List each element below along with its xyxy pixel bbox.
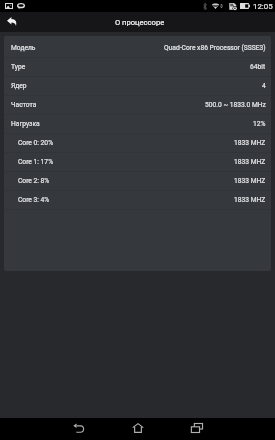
staticText: 64bit — [250, 63, 266, 71]
staticText: Модель — [11, 44, 36, 52]
button[interactable]: Частота — [4, 96, 271, 115]
button[interactable]: Ядер — [4, 77, 271, 96]
staticText: Ядер — [11, 82, 27, 90]
button[interactable]: Core 1: 17% — [4, 153, 271, 172]
staticText: Core 1: 17% — [18, 158, 54, 166]
button[interactable]: Back — [49, 417, 108, 439]
button[interactable]: Core 3: 4% — [4, 191, 271, 210]
staticText: 1833 MHZ — [234, 158, 266, 166]
staticText: Нагрузка — [11, 120, 40, 128]
staticText: 500.0 ~ 1833.0 MHz — [205, 101, 266, 109]
staticText: Частота — [11, 101, 37, 109]
staticText: Core 0: 20% — [18, 139, 54, 147]
button[interactable]: Модель — [4, 39, 271, 58]
staticText: 12% — [253, 120, 266, 128]
staticText: 12:05 — [253, 2, 273, 11]
staticText: Quad-Core x86 Processor (SSSE3) — [164, 44, 266, 52]
button[interactable]: Recent apps — [167, 417, 226, 439]
button[interactable]: Core 2: 8% — [4, 172, 271, 191]
staticText: Type — [11, 63, 26, 71]
staticText: 1833 MHZ — [234, 139, 266, 147]
button[interactable]: Type — [4, 58, 271, 77]
staticText: Core 3: 4% — [18, 196, 50, 204]
button[interactable]: Нагрузка — [4, 115, 271, 134]
staticText: 1833 MHZ — [234, 177, 266, 185]
button[interactable]: Core 0: 20% — [4, 134, 271, 153]
staticText: 4 — [262, 82, 266, 90]
staticText: О процессоре — [115, 18, 165, 27]
staticText: 1833 MHZ — [234, 196, 266, 204]
button[interactable]: Home — [108, 417, 167, 439]
staticText: Core 2: 8% — [18, 177, 50, 185]
button[interactable]: Back — [2, 11, 22, 31]
